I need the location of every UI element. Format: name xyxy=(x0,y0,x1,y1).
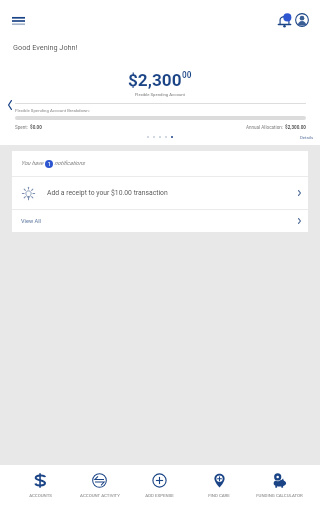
button[interactable]: Menu xyxy=(6,8,31,33)
staticText: $2,300 xyxy=(128,70,182,90)
staticText: FUNDING CALCULATOR xyxy=(256,493,303,498)
button[interactable]: FIND CARE xyxy=(189,465,249,512)
staticText: $2,300.00 xyxy=(285,125,306,130)
staticText: Good Evening John! xyxy=(13,43,78,52)
button[interactable]: ACCOUNTS xyxy=(11,465,70,512)
staticText: FIND CARE xyxy=(208,493,230,498)
staticText: Add a receipt to your $10.00 transaction xyxy=(47,189,168,197)
staticText: $0.00 xyxy=(30,125,42,130)
staticText: Flexible Spending Account xyxy=(0,92,320,97)
button[interactable]: Account xyxy=(292,10,312,30)
staticText: View All xyxy=(21,218,41,225)
staticText: You have xyxy=(21,160,45,167)
button[interactable]: Notifications xyxy=(274,10,294,30)
staticText: Flexible Spending Account Breakdown: xyxy=(15,108,90,113)
button[interactable]: FUNDING CALCULATOR xyxy=(249,465,309,512)
button[interactable]: Add a receipt to your $10.00 transaction xyxy=(12,177,308,209)
button[interactable]: ACCOUNT ACTIVITY xyxy=(70,465,129,512)
staticText: 00 xyxy=(182,70,192,80)
button[interactable]: Previous account xyxy=(2,97,18,113)
staticText: ACCOUNT ACTIVITY xyxy=(80,493,120,498)
staticText: ADD EXPENSE xyxy=(145,493,174,498)
button[interactable]: ADD EXPENSE xyxy=(129,465,189,512)
staticText: ACCOUNTS xyxy=(29,493,52,498)
staticText: Annual Allocation: xyxy=(246,125,285,130)
staticText: Spent: xyxy=(15,125,30,130)
staticText: notifications xyxy=(53,160,85,167)
button[interactable]: View All xyxy=(12,210,308,232)
button[interactable]: You have xyxy=(12,151,308,176)
staticText: 1 xyxy=(48,162,51,167)
button[interactable]: Details xyxy=(300,135,314,140)
